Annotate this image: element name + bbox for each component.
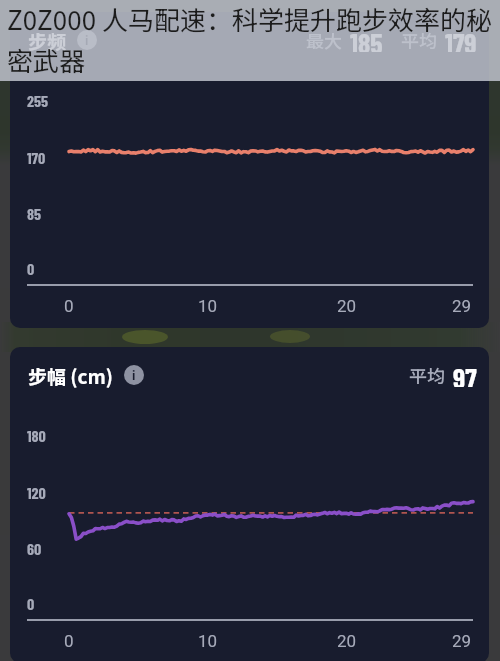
staticText: 步频 bbox=[28, 27, 67, 53]
staticText: 180 bbox=[27, 426, 46, 445]
staticText: 20 bbox=[337, 631, 357, 651]
staticText: 170 bbox=[27, 148, 46, 167]
button[interactable]: 步频 bbox=[10, 12, 489, 328]
staticText: 29 bbox=[452, 296, 472, 316]
staticText: Z0Z000 人马配速：科学提升跑步效率的秘密武器 bbox=[7, 0, 500, 78]
staticText: 步幅 (cm) bbox=[28, 362, 114, 388]
staticText: i bbox=[132, 368, 136, 383]
staticText: 10 bbox=[198, 296, 218, 316]
staticText: 97 bbox=[453, 361, 477, 387]
staticText: 最大 bbox=[306, 27, 342, 53]
staticText: 120 bbox=[27, 483, 46, 502]
staticText: 85 bbox=[27, 204, 42, 223]
staticText: 0 bbox=[27, 259, 35, 278]
button[interactable]: 步幅 (cm) bbox=[28, 362, 144, 388]
staticText: 255 bbox=[27, 91, 49, 110]
button[interactable]: 指标说明 bbox=[77, 30, 97, 50]
staticText: 平均 bbox=[409, 362, 445, 388]
staticText: 10 bbox=[198, 631, 218, 651]
staticText: 0 bbox=[64, 296, 74, 316]
button[interactable]: 步频 bbox=[28, 27, 97, 53]
staticText: 平均 bbox=[401, 27, 437, 53]
staticText: 0 bbox=[27, 594, 35, 613]
staticText: 185 bbox=[350, 26, 383, 52]
button[interactable]: 指标说明 bbox=[124, 365, 144, 385]
staticText: 29 bbox=[452, 631, 472, 651]
button[interactable]: 步幅 (cm) bbox=[10, 347, 489, 661]
staticText: 0 bbox=[64, 631, 74, 651]
staticText: 60 bbox=[27, 539, 42, 558]
staticText: i bbox=[85, 33, 89, 48]
staticText: 20 bbox=[337, 296, 357, 316]
staticText: 179 bbox=[445, 26, 477, 52]
